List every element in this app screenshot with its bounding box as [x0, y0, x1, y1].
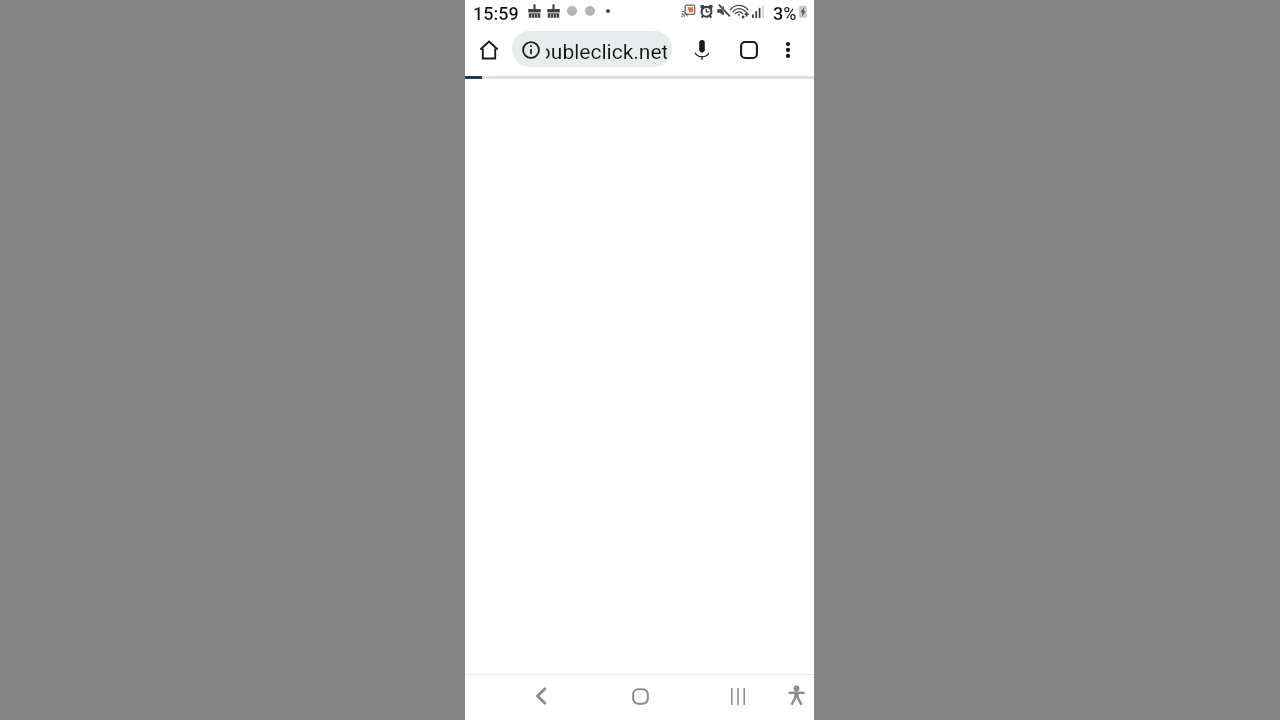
button[interactable]: Voice search [684, 32, 720, 68]
staticText: doubleclick.net [546, 40, 667, 60]
button[interactable]: Accessibility [779, 678, 813, 712]
button[interactable]: Back [524, 679, 558, 713]
button[interactable]: Home [471, 32, 507, 68]
staticText: 3% [773, 3, 797, 24]
button[interactable]: Recent apps [721, 679, 755, 713]
button[interactable]: Switch tabs [731, 32, 767, 68]
button[interactable]: doubleclick.net [512, 31, 672, 67]
staticText: 15:59 [473, 3, 519, 24]
button[interactable]: More options [770, 32, 806, 68]
button[interactable]: Home [623, 679, 657, 713]
